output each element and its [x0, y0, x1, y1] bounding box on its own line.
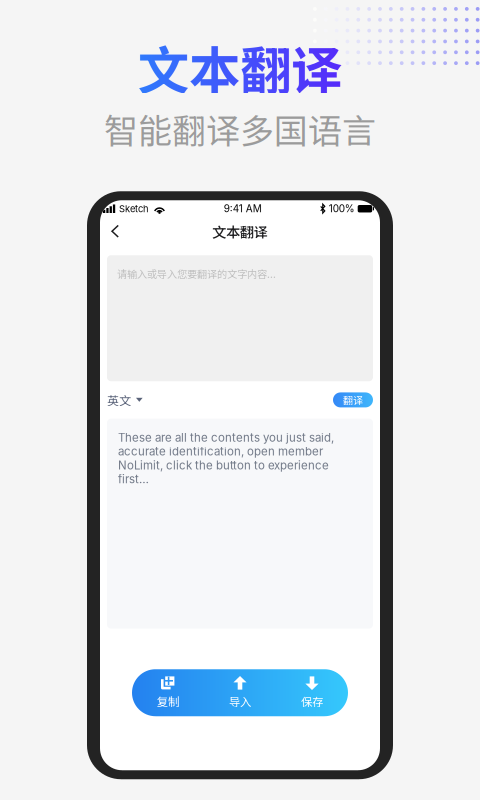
staticText: 100% — [329, 203, 355, 215]
staticText: 请输入或导入您要翻译的文字内容... — [117, 266, 276, 281]
staticText: 9:41 AM — [224, 203, 262, 215]
button[interactable]: 英文 — [107, 385, 143, 415]
button[interactable]: 复制 — [132, 668, 204, 717]
staticText: 翻译 — [343, 393, 363, 407]
staticText: 英文 — [107, 391, 131, 409]
staticText: 复制 — [157, 693, 179, 709]
staticText: 保存 — [301, 693, 323, 709]
button[interactable]: Back — [100, 218, 131, 245]
staticText: 文本翻译 — [212, 221, 268, 241]
button[interactable]: 保存 — [276, 668, 348, 717]
staticText: These are all the contents you just said… — [118, 431, 334, 486]
button[interactable]: 翻译 — [333, 392, 373, 407]
staticText: 导入 — [229, 693, 251, 709]
button[interactable]: 导入 — [204, 668, 276, 717]
staticText: Sketch — [119, 203, 149, 214]
staticText: 智能翻译多国语言 — [104, 104, 376, 153]
